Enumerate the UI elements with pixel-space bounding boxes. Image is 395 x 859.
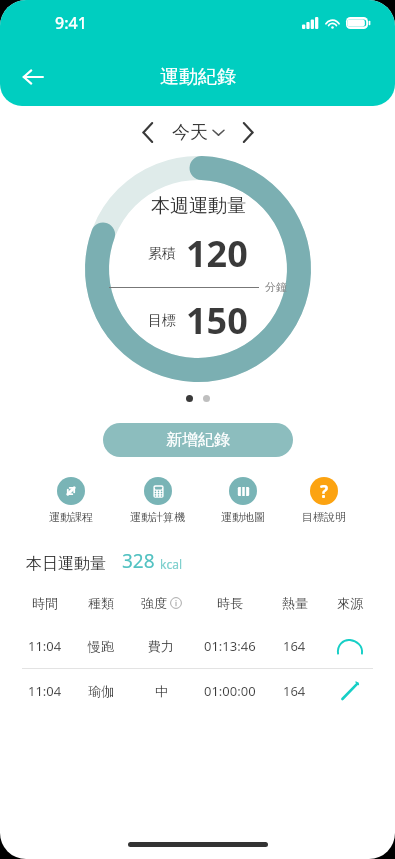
staticText: 強度 — [141, 595, 167, 611]
staticText: 來源 — [337, 595, 363, 611]
staticText: 分鐘 — [265, 280, 287, 294]
button[interactable]: 11:04 — [0, 669, 395, 713]
other: Synced from cloud — [337, 638, 363, 655]
staticText: ? — [320, 480, 329, 503]
other: Edit record — [340, 681, 360, 701]
staticText: 種類 — [88, 595, 114, 611]
button[interactable]: 新增紀錄 — [103, 423, 293, 457]
staticText: 時長 — [217, 595, 243, 611]
staticText: 目標說明 — [302, 510, 346, 524]
staticText: 本日運動量 — [26, 554, 106, 574]
staticText: 328 — [122, 548, 155, 574]
staticText: 累積 — [148, 245, 176, 263]
staticText: 今天 — [172, 121, 208, 144]
button[interactable]: 運動計算機 — [126, 475, 189, 526]
staticText: 01:00:00 — [204, 682, 256, 700]
staticText: kcal — [160, 556, 182, 572]
button[interactable]: 今天 — [166, 117, 230, 148]
staticText: 目標 — [148, 312, 176, 330]
staticText: 01:13:46 — [204, 637, 256, 655]
staticText: 費力 — [148, 638, 174, 654]
staticText: 11:04 — [28, 637, 62, 655]
button[interactable]: 運動地圖 — [217, 475, 269, 526]
staticText: 中 — [155, 683, 168, 699]
staticText: 164 — [283, 637, 306, 655]
staticText: 9:41 — [55, 12, 87, 34]
button[interactable]: ? — [298, 475, 350, 526]
button[interactable]: Next day — [230, 114, 266, 150]
staticText: 164 — [283, 682, 306, 700]
button[interactable]: 運動課程 — [45, 475, 97, 526]
staticText: 新增紀錄 — [166, 430, 230, 450]
staticText: 150 — [186, 296, 248, 345]
button[interactable]: Previous day — [130, 114, 166, 150]
staticText: 時間 — [32, 595, 58, 611]
staticText: 運動地圖 — [221, 510, 265, 524]
staticText: 運動紀錄 — [160, 65, 236, 89]
staticText: 11:04 — [28, 682, 62, 700]
staticText: 瑜伽 — [88, 683, 114, 699]
button[interactable]: 11:04 — [0, 624, 395, 668]
staticText: 熱量 — [282, 595, 308, 611]
button[interactable]: Intensity info — [170, 597, 182, 609]
staticText: 運動計算機 — [130, 510, 185, 524]
staticText: 慢跑 — [88, 638, 114, 654]
staticText: 120 — [186, 229, 248, 278]
button[interactable]: Back — [10, 54, 56, 100]
staticText: 運動課程 — [49, 510, 93, 524]
staticText: 本週運動量 — [151, 194, 246, 218]
